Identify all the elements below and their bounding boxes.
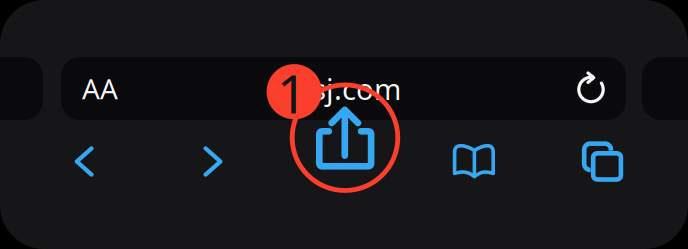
button[interactable]: Back [51, 128, 117, 194]
button[interactable]: Forward [181, 128, 247, 194]
button[interactable]: Share [312, 128, 378, 194]
staticText: 1 [277, 57, 308, 128]
staticText: AA [82, 70, 118, 107]
button[interactable]: Tabs [569, 128, 635, 194]
staticText: wsj.com [289, 69, 401, 108]
button[interactable]: Reload [562, 59, 620, 117]
button[interactable]: wsj.com [201, 57, 401, 120]
button[interactable]: Page settings [61, 57, 139, 120]
button[interactable]: Bookmarks [442, 128, 508, 194]
